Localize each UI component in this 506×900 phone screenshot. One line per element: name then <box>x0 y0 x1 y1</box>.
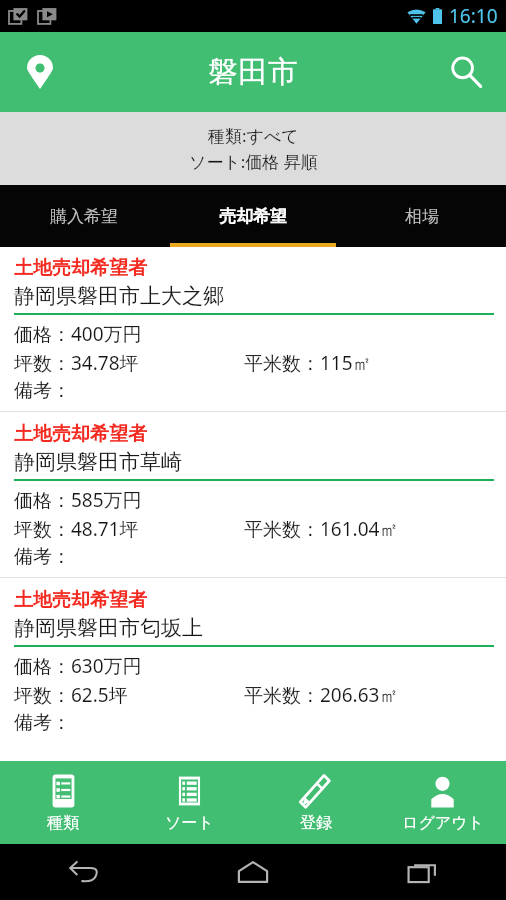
button[interactable]: 種類 <box>0 761 126 844</box>
staticText: 16:10 <box>449 3 498 29</box>
button[interactable]: 土地売却希望者 <box>0 579 506 743</box>
staticText: 坪数：34.78坪 <box>14 350 139 376</box>
staticText: 種類 <box>47 813 79 833</box>
staticText: 価格：400万円 <box>14 321 142 347</box>
button[interactable]: 相場 <box>337 185 506 247</box>
staticText: 売却希望 <box>219 206 287 227</box>
button[interactable]: 土地売却希望者 <box>0 247 506 411</box>
staticText: 備考： <box>14 545 71 569</box>
button[interactable]: 土地売却希望者 <box>0 413 506 577</box>
button[interactable]: 売却希望 <box>168 185 337 247</box>
button[interactable]: 登録 <box>252 761 379 844</box>
staticText: 土地売却希望者 <box>14 422 147 446</box>
button[interactable]: 種類:すべて <box>0 112 506 185</box>
staticText: 静岡県磐田市草崎 <box>14 449 182 475</box>
button[interactable]: ログアウト <box>379 761 506 844</box>
button[interactable]: Home <box>168 844 337 900</box>
staticText: ログアウト <box>402 813 484 833</box>
staticText: 平米数：161.04㎡ <box>244 516 399 542</box>
staticText: 静岡県磐田市上大之郷 <box>14 283 224 309</box>
staticText: 土地売却希望者 <box>14 588 147 612</box>
button[interactable]: Location <box>10 42 70 102</box>
staticText: 坪数：62.5坪 <box>14 682 128 708</box>
staticText: ソート:価格 昇順 <box>189 150 318 173</box>
button[interactable]: Search <box>436 42 496 102</box>
button[interactable]: 購入希望 <box>0 185 168 247</box>
staticText: 土地売却希望者 <box>14 256 147 280</box>
staticText: 磐田市 <box>208 53 298 91</box>
staticText: 坪数：48.71坪 <box>14 516 139 542</box>
button[interactable]: ソート <box>126 761 252 844</box>
staticText: 登録 <box>300 813 332 833</box>
button[interactable]: Recents <box>337 844 506 900</box>
staticText: 平米数：115㎡ <box>244 350 372 376</box>
button[interactable]: Back <box>0 844 168 900</box>
staticText: 備考： <box>14 379 71 403</box>
staticText: 備考： <box>14 711 71 735</box>
staticText: ソート <box>165 813 214 833</box>
staticText: 種類:すべて <box>208 124 299 147</box>
staticText: 平米数：206.63㎡ <box>244 682 399 708</box>
staticText: 静岡県磐田市匂坂上 <box>14 615 203 641</box>
staticText: 相場 <box>405 206 439 227</box>
staticText: 購入希望 <box>50 206 118 227</box>
staticText: 価格：630万円 <box>14 653 142 679</box>
staticText: 価格：585万円 <box>14 487 142 513</box>
